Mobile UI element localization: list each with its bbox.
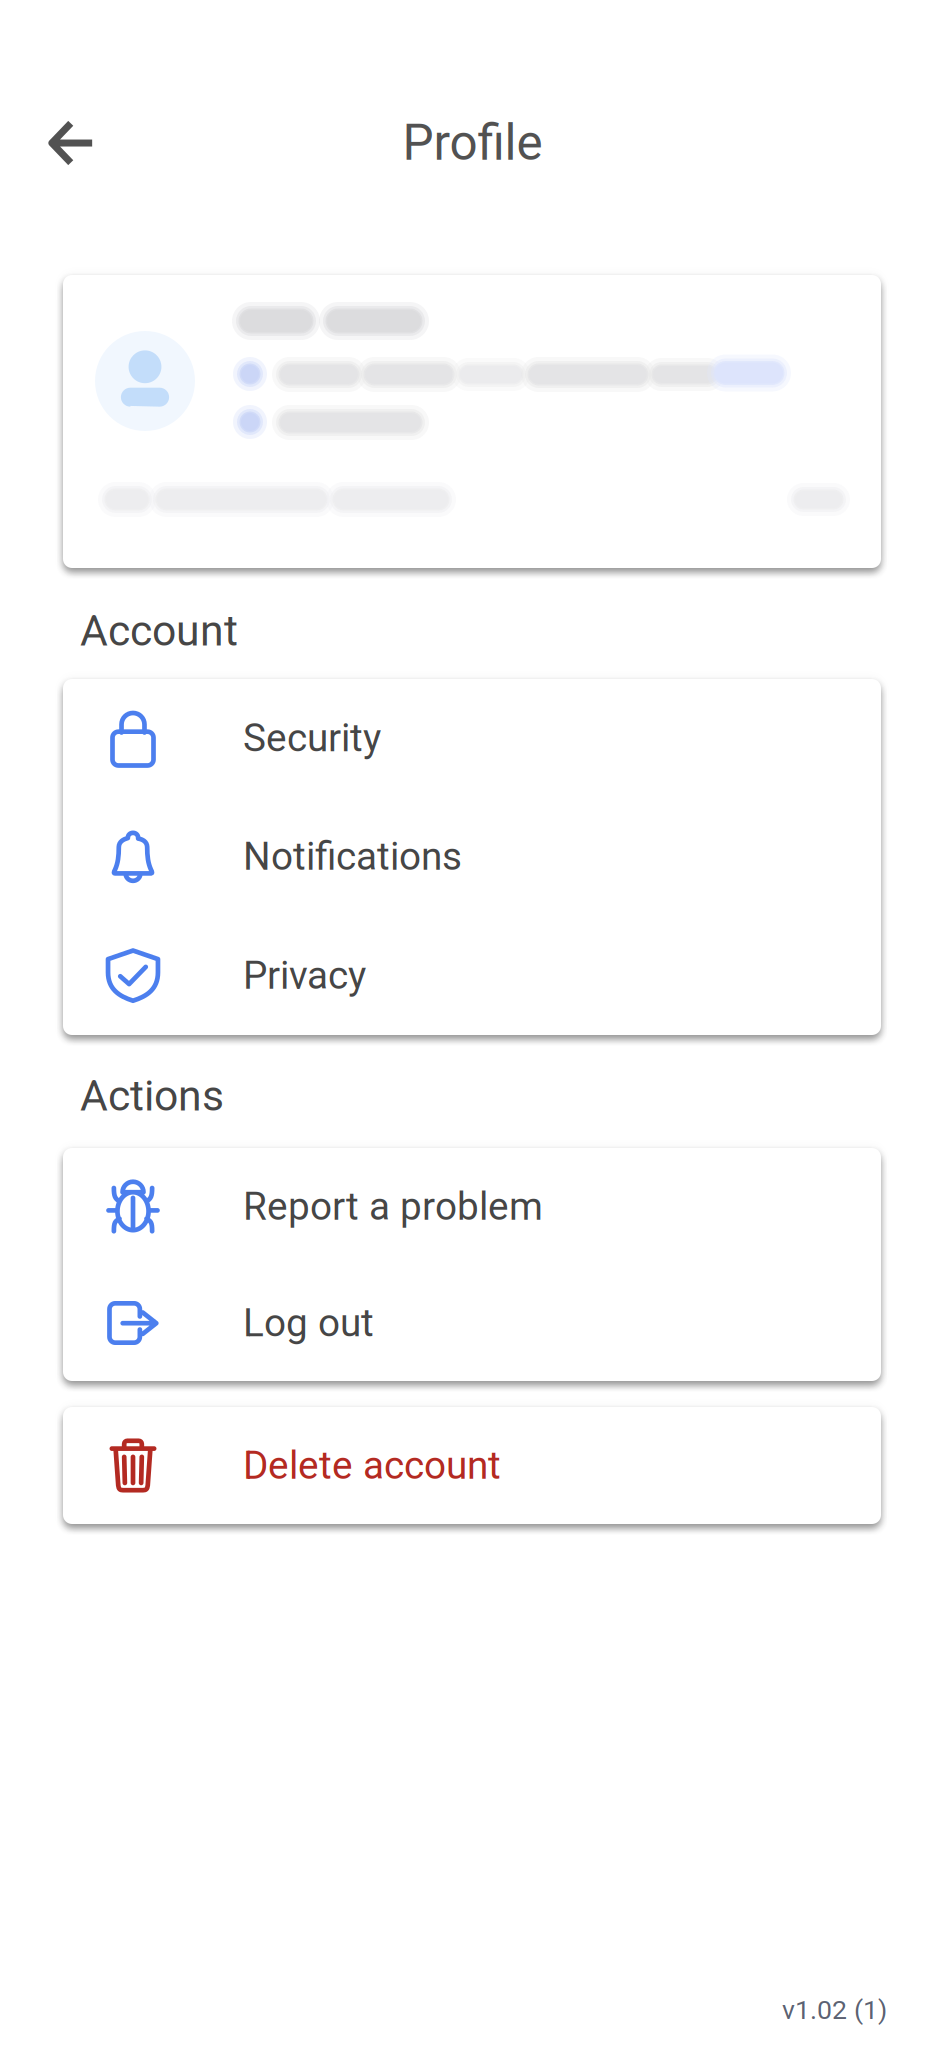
staticText: Privacy (243, 953, 366, 998)
staticText: Notifications (243, 834, 462, 879)
button[interactable]: Notifications (63, 797, 881, 916)
button[interactable]: Privacy (63, 916, 881, 1035)
staticText: Log out (243, 1300, 374, 1346)
staticText: Profile (402, 114, 542, 172)
staticText: Security (243, 715, 381, 761)
button[interactable]: Security (63, 679, 881, 797)
button[interactable]: Delete account (63, 1407, 881, 1524)
staticText: Report a problem (243, 1184, 543, 1229)
staticText: Delete account (243, 1443, 501, 1488)
button[interactable]: Report a problem (63, 1148, 881, 1265)
button[interactable]: Log out (63, 1265, 881, 1381)
staticText: v1.02 (1) (782, 1994, 887, 2026)
button[interactable]: Edit profile (689, 345, 809, 401)
staticText: Account (80, 606, 238, 656)
staticText: Actions (80, 1071, 224, 1121)
button[interactable]: Back (24, 95, 120, 191)
